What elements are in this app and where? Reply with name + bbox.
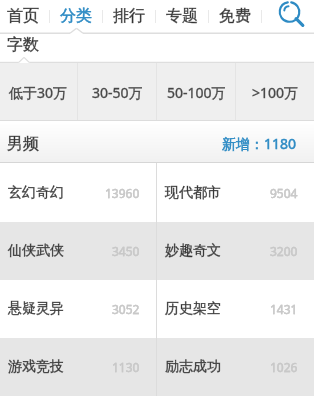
staticText: 玄幻奇幻 [8, 184, 64, 202]
staticText: 新增：1180 [222, 134, 297, 153]
staticText: >100万 [252, 83, 299, 102]
staticText: 历史架空 [165, 300, 221, 318]
button[interactable]: 仙侠武侠 [0, 222, 156, 280]
button[interactable]: 现代都市 [157, 163, 314, 222]
staticText: 游戏竞技 [8, 358, 64, 376]
staticText: 排行 [113, 6, 145, 26]
staticText: 新增：1180 [222, 134, 297, 153]
staticText: 1431 [270, 301, 298, 317]
staticText: 免费 [219, 6, 251, 26]
staticText: 1026 [270, 359, 298, 375]
staticText: 50-100万 [167, 83, 226, 102]
staticText: 男频 [7, 134, 39, 154]
staticText: 仙侠武侠 [8, 242, 64, 260]
staticText: 首页 [7, 6, 39, 26]
button[interactable]: Search [262, 0, 314, 32]
staticText: 专题 [166, 6, 198, 26]
staticText: 现代都市 [165, 184, 221, 202]
staticText: 9504 [270, 185, 298, 201]
staticText: 悬疑灵异 [8, 300, 64, 318]
staticText: 排行 [113, 6, 145, 26]
button[interactable]: 专题 [156, 0, 208, 32]
staticText: 1130 [112, 359, 140, 375]
staticText: 50-100万 [167, 83, 226, 102]
staticText: 低于30万 [9, 83, 68, 102]
staticText: 低于30万 [9, 83, 68, 102]
button[interactable]: 玄幻奇幻 [0, 163, 156, 222]
button[interactable]: 低于30万 [0, 63, 77, 121]
staticText: 妙趣奇文 [165, 242, 221, 260]
staticText: 13960 [105, 185, 140, 201]
staticText: 3200 [270, 243, 298, 259]
staticText: 仙侠武侠 [8, 242, 64, 260]
staticText: 30-50万 [92, 83, 143, 102]
staticText: 免费 [219, 6, 251, 26]
button[interactable]: 免费 [209, 0, 261, 32]
staticText: 3052 [112, 301, 140, 317]
staticText: 3052 [112, 301, 140, 317]
staticText: 历史架空 [165, 300, 221, 318]
button[interactable]: 首页 [0, 0, 49, 32]
staticText: 游戏竞技 [8, 358, 64, 376]
button[interactable]: 励志成功 [157, 338, 314, 396]
staticText: 分类 [60, 6, 92, 26]
staticText: 字数 [7, 35, 39, 55]
staticText: 妙趣奇文 [165, 242, 221, 260]
staticText: 悬疑灵异 [8, 300, 64, 318]
button[interactable]: 妙趣奇文 [157, 222, 314, 280]
staticText: 现代都市 [165, 184, 221, 202]
staticText: 专题 [166, 6, 198, 26]
staticText: >100万 [252, 83, 299, 102]
staticText: 1130 [112, 359, 140, 375]
button[interactable]: 分类 [50, 0, 102, 32]
staticText: 3450 [112, 243, 140, 259]
button[interactable]: 30-50万 [78, 63, 156, 121]
staticText: 玄幻奇幻 [8, 184, 64, 202]
staticText: 分类 [60, 6, 92, 26]
staticText: 1026 [270, 359, 298, 375]
button[interactable]: >100万 [236, 63, 314, 121]
staticText: 13960 [105, 185, 140, 201]
staticText: 3450 [112, 243, 140, 259]
staticText: 字数 [7, 35, 39, 55]
button[interactable]: 50-100万 [157, 63, 235, 121]
button[interactable]: 排行 [103, 0, 155, 32]
staticText: 励志成功 [165, 358, 221, 376]
staticText: 1431 [270, 301, 298, 317]
staticText: 30-50万 [92, 83, 143, 102]
staticText: 首页 [7, 6, 39, 26]
staticText: 9504 [270, 185, 298, 201]
button[interactable]: 悬疑灵异 [0, 280, 156, 338]
button[interactable]: 游戏竞技 [0, 338, 156, 396]
staticText: 励志成功 [165, 358, 221, 376]
staticText: 男频 [7, 134, 39, 154]
button[interactable]: 历史架空 [157, 280, 314, 338]
staticText: 3200 [270, 243, 298, 259]
